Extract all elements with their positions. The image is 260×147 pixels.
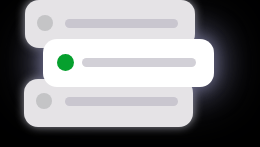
button[interactable] <box>24 79 193 127</box>
button[interactable] <box>25 0 195 48</box>
button[interactable]: Unread indicator <box>43 39 214 87</box>
other: Unread indicator <box>57 54 74 71</box>
